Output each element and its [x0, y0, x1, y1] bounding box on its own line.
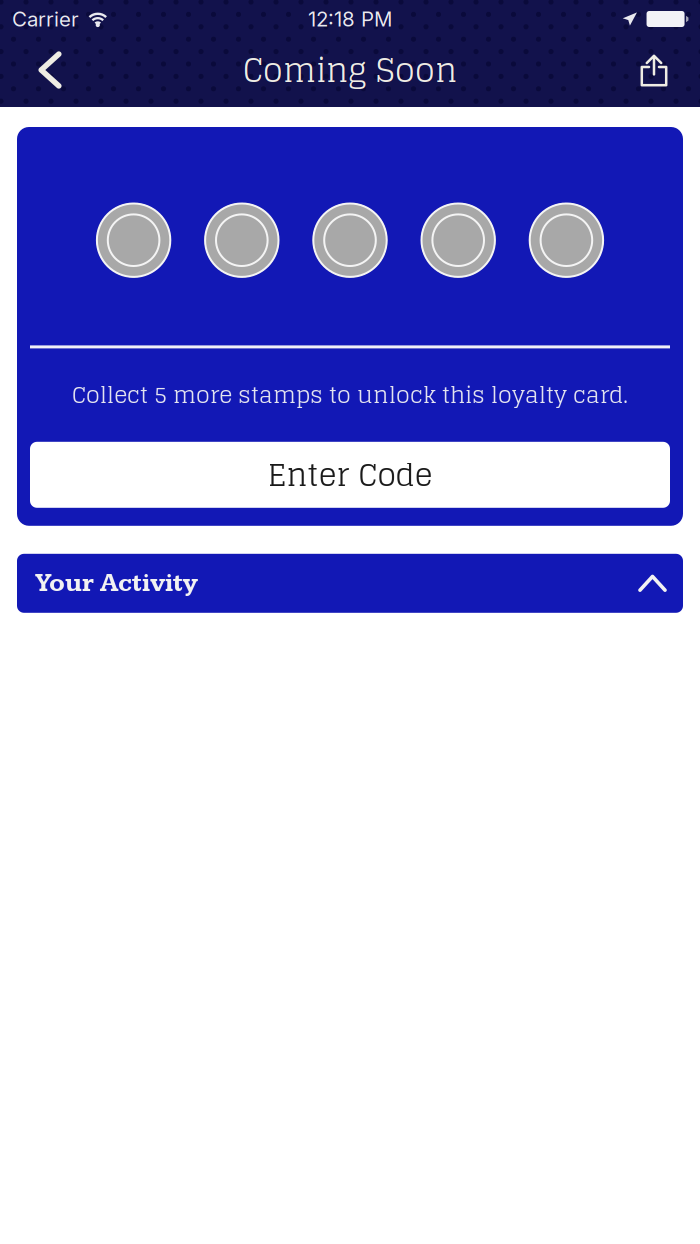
button[interactable]: Share — [623, 37, 685, 103]
button[interactable]: Your Activity — [17, 554, 683, 613]
staticText: Enter Code — [267, 448, 432, 502]
staticText: Collect 5 more stamps to unlock this loy… — [72, 374, 628, 415]
staticText: Coming Soon — [243, 41, 457, 99]
button[interactable]: Back — [19, 37, 81, 103]
staticText: Carrier — [12, 7, 79, 31]
staticText: Your Activity — [35, 568, 197, 599]
staticText: 12:18 PM — [308, 7, 392, 31]
button[interactable]: Enter Code — [30, 442, 670, 508]
